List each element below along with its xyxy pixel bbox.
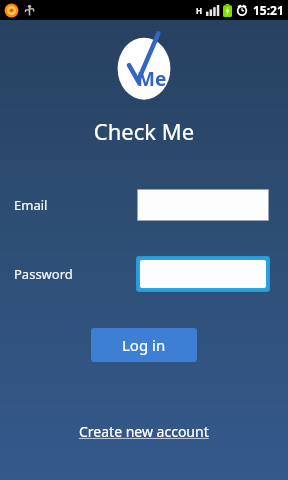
staticText: Email — [14, 196, 48, 214]
staticText: 15:21 — [253, 2, 284, 18]
button[interactable] — [136, 256, 270, 292]
staticText: Log in — [122, 335, 166, 355]
staticText: Password — [14, 265, 73, 283]
staticText: H — [196, 5, 203, 16]
staticText: Check Me — [0, 116, 288, 146]
button[interactable]: Create new account — [73, 418, 215, 445]
button[interactable]: Log in — [91, 328, 197, 362]
button[interactable] — [136, 188, 270, 222]
staticText: Me — [137, 66, 167, 92]
staticText: Create new account — [79, 422, 209, 441]
